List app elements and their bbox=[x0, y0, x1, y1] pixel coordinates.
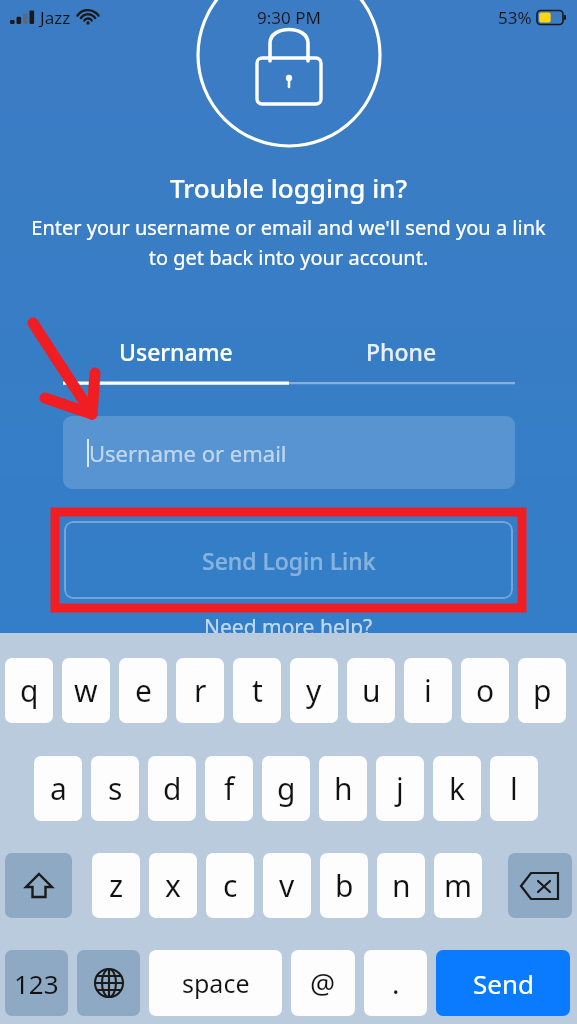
button[interactable]: . bbox=[364, 950, 427, 1016]
staticText: z bbox=[109, 865, 124, 906]
staticText: . bbox=[392, 964, 400, 1002]
button[interactable]: x bbox=[149, 853, 197, 918]
staticText: u bbox=[362, 670, 381, 711]
button[interactable]: n bbox=[377, 853, 425, 918]
staticText: o bbox=[476, 670, 495, 711]
button[interactable]: m bbox=[434, 853, 482, 918]
button[interactable]: r bbox=[176, 658, 224, 723]
staticText: 53% bbox=[498, 6, 532, 29]
button[interactable]: w bbox=[62, 658, 110, 723]
staticText: v bbox=[279, 865, 295, 906]
button[interactable]: q bbox=[5, 658, 53, 723]
button[interactable]: b bbox=[320, 853, 368, 918]
button[interactable]: a bbox=[34, 756, 82, 821]
button[interactable]: d bbox=[148, 756, 196, 821]
staticText: h bbox=[334, 768, 353, 809]
button[interactable]: j bbox=[376, 756, 424, 821]
staticText: Trouble logging in? bbox=[170, 170, 408, 205]
staticText: t bbox=[252, 670, 263, 711]
staticText: s bbox=[108, 768, 123, 809]
staticText: Send bbox=[473, 966, 534, 1001]
button[interactable]: Backspace bbox=[508, 853, 572, 918]
staticText: n bbox=[392, 865, 411, 906]
staticText: 9:30 PM bbox=[257, 6, 321, 29]
staticText: d bbox=[163, 768, 182, 809]
staticText: k bbox=[449, 768, 466, 809]
button[interactable]: t bbox=[233, 658, 281, 723]
button[interactable]: Shift bbox=[5, 853, 72, 918]
staticText: l bbox=[510, 768, 518, 809]
button[interactable]: Change keyboard bbox=[77, 950, 140, 1016]
staticText: Send Login Link bbox=[202, 545, 376, 576]
button[interactable]: @ bbox=[291, 950, 355, 1016]
staticText: g bbox=[277, 768, 296, 809]
staticText: b bbox=[335, 865, 354, 906]
button[interactable]: k bbox=[433, 756, 481, 821]
button[interactable]: 123 bbox=[5, 950, 68, 1016]
staticText: Need more help? bbox=[204, 613, 373, 642]
staticText: @ bbox=[310, 964, 336, 1002]
button[interactable]: f bbox=[205, 756, 253, 821]
staticText: Username bbox=[119, 336, 233, 367]
button[interactable]: l bbox=[490, 756, 538, 821]
staticText: Enter your username or email and we'll s… bbox=[26, 214, 551, 271]
button[interactable]: Phone bbox=[288, 326, 514, 376]
button[interactable]: Send bbox=[436, 950, 570, 1016]
staticText: r bbox=[194, 670, 207, 711]
button[interactable]: v bbox=[263, 853, 311, 918]
staticText: x bbox=[165, 865, 181, 906]
staticText: w bbox=[74, 670, 98, 711]
button[interactable]: e bbox=[119, 658, 167, 723]
staticText: p bbox=[533, 670, 552, 711]
staticText: q bbox=[20, 670, 39, 711]
button[interactable]: u bbox=[347, 658, 395, 723]
staticText: e bbox=[135, 670, 152, 711]
staticText: a bbox=[50, 768, 67, 809]
staticText: space bbox=[182, 966, 250, 1000]
staticText: j bbox=[396, 768, 404, 809]
button[interactable]: space bbox=[149, 950, 282, 1016]
button[interactable]: o bbox=[461, 658, 509, 723]
button[interactable]: Username or email bbox=[63, 416, 515, 489]
button[interactable]: g bbox=[262, 756, 310, 821]
staticText: m bbox=[444, 865, 473, 906]
button[interactable]: z bbox=[92, 853, 140, 918]
button[interactable]: i bbox=[404, 658, 452, 723]
staticText: Jazz bbox=[40, 6, 71, 29]
button[interactable]: h bbox=[319, 756, 367, 821]
button[interactable]: Need more help? bbox=[0, 613, 577, 642]
staticText: Username or email bbox=[89, 438, 287, 468]
button[interactable]: p bbox=[518, 658, 566, 723]
button[interactable]: s bbox=[91, 756, 139, 821]
staticText: Phone bbox=[366, 336, 437, 367]
staticText: c bbox=[223, 865, 238, 906]
staticText: f bbox=[224, 768, 235, 809]
button[interactable]: y bbox=[290, 658, 338, 723]
staticText: 123 bbox=[14, 966, 59, 1001]
staticText: i bbox=[424, 670, 432, 711]
staticText: y bbox=[306, 670, 322, 711]
button[interactable]: Username bbox=[63, 326, 288, 376]
button[interactable]: c bbox=[206, 853, 254, 918]
button[interactable]: Send Login Link bbox=[64, 521, 513, 599]
